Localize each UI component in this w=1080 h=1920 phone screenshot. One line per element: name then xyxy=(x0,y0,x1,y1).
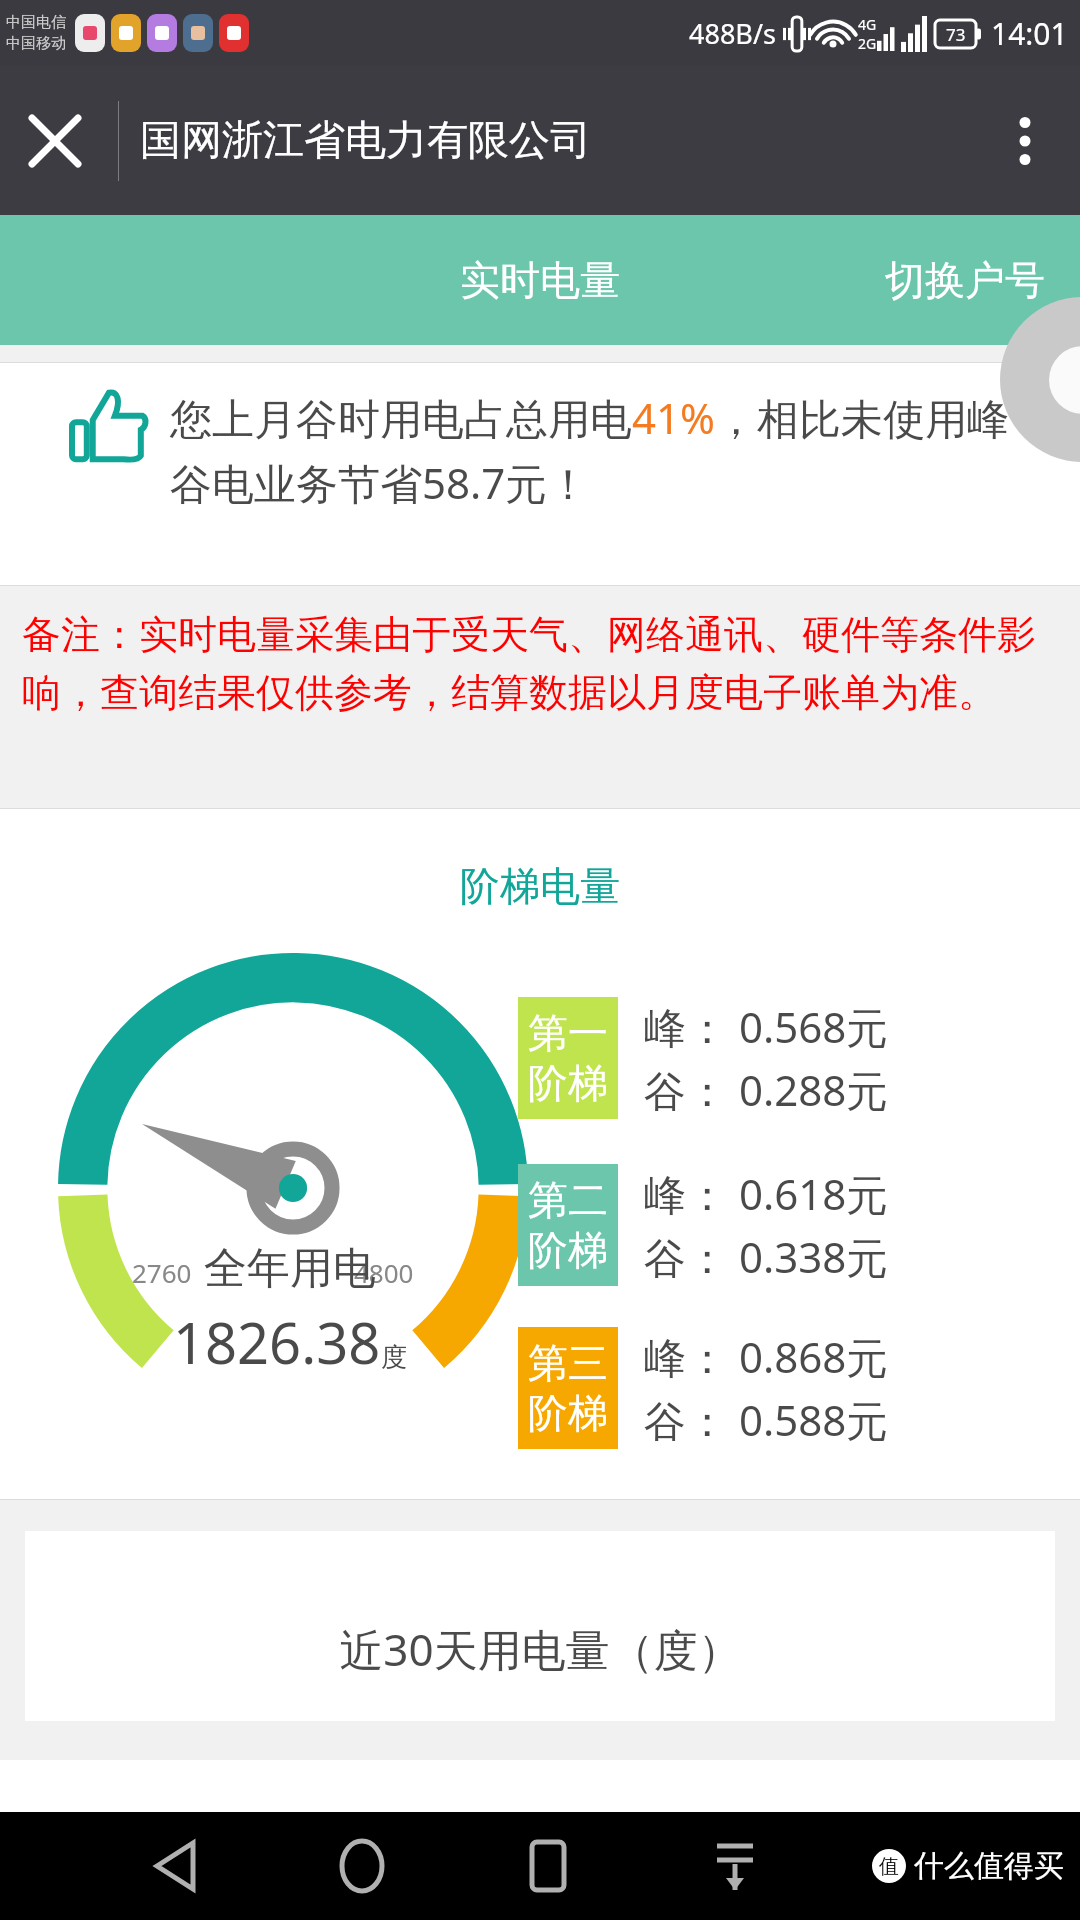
staticText: 4G xyxy=(858,15,877,34)
button[interactable]: 第三 xyxy=(518,1327,889,1449)
staticText: 阶梯 xyxy=(528,1388,608,1438)
staticText: 阶梯 xyxy=(528,1225,608,1275)
button[interactable]: 第一 xyxy=(518,997,889,1119)
staticText: 第二 xyxy=(528,1175,608,1225)
staticText: 实时电量 xyxy=(460,255,620,305)
staticText: 阶梯电量 xyxy=(460,861,620,911)
button[interactable]: Home xyxy=(317,1821,407,1911)
staticText: 值 xyxy=(879,1854,899,1879)
staticText: 中国电信 xyxy=(6,13,66,32)
button[interactable]: Recents xyxy=(503,1821,593,1911)
staticText: 国网浙江省电力有限公司 xyxy=(140,115,591,167)
button[interactable]: 近30天用电量（度） xyxy=(25,1531,1055,1721)
staticText: 73 xyxy=(946,23,966,46)
staticText: 峰： 0.568元 xyxy=(644,998,889,1055)
staticText: 第三 xyxy=(528,1338,608,1388)
staticText: 第一 xyxy=(528,1008,608,1058)
button[interactable]: Floating action xyxy=(1000,297,1080,462)
staticText: 谷： 0.288元 xyxy=(644,1061,889,1118)
staticText: 4800 xyxy=(354,1255,414,1290)
staticText: 14:01 xyxy=(991,13,1068,54)
staticText: 全年用电 xyxy=(204,1242,376,1296)
staticText: 谷： 0.588元 xyxy=(644,1391,889,1448)
button[interactable]: 实时电量 xyxy=(390,215,690,345)
staticText: 2G xyxy=(858,34,877,53)
staticText: 1826.38 xyxy=(173,1304,381,1380)
staticText: 峰： 0.868元 xyxy=(644,1328,889,1385)
button[interactable]: Back xyxy=(130,1821,220,1911)
staticText: 中国移动 xyxy=(6,34,66,53)
button[interactable]: 第二 xyxy=(518,1164,889,1286)
staticText: 切换户号 xyxy=(885,255,1045,305)
staticText: 度 xyxy=(381,1341,407,1374)
staticText: 2760 xyxy=(132,1255,192,1290)
staticText: 您上月谷时用电占总用电41%，相比未使用峰谷电业务节省58.7元！ xyxy=(170,389,1040,511)
button[interactable]: Hide navigation bar xyxy=(690,1821,780,1911)
staticText: 什么值得买 xyxy=(914,1847,1064,1885)
staticText: 备注：实时电量采集由于受天气、网络通讯、硬件等条件影响，查询结果仅供参考，结算数… xyxy=(22,610,1062,718)
button[interactable]: 切换户号 xyxy=(850,215,1080,345)
staticText: 近30天用电量（度） xyxy=(339,1619,742,1679)
staticText: 阶梯 xyxy=(528,1058,608,1108)
button[interactable]: Close xyxy=(0,86,110,196)
staticText: 488B/s xyxy=(689,15,776,52)
staticText: 峰： 0.618元 xyxy=(644,1165,889,1222)
staticText: 谷： 0.338元 xyxy=(644,1228,889,1285)
button[interactable]: More options xyxy=(970,86,1080,196)
